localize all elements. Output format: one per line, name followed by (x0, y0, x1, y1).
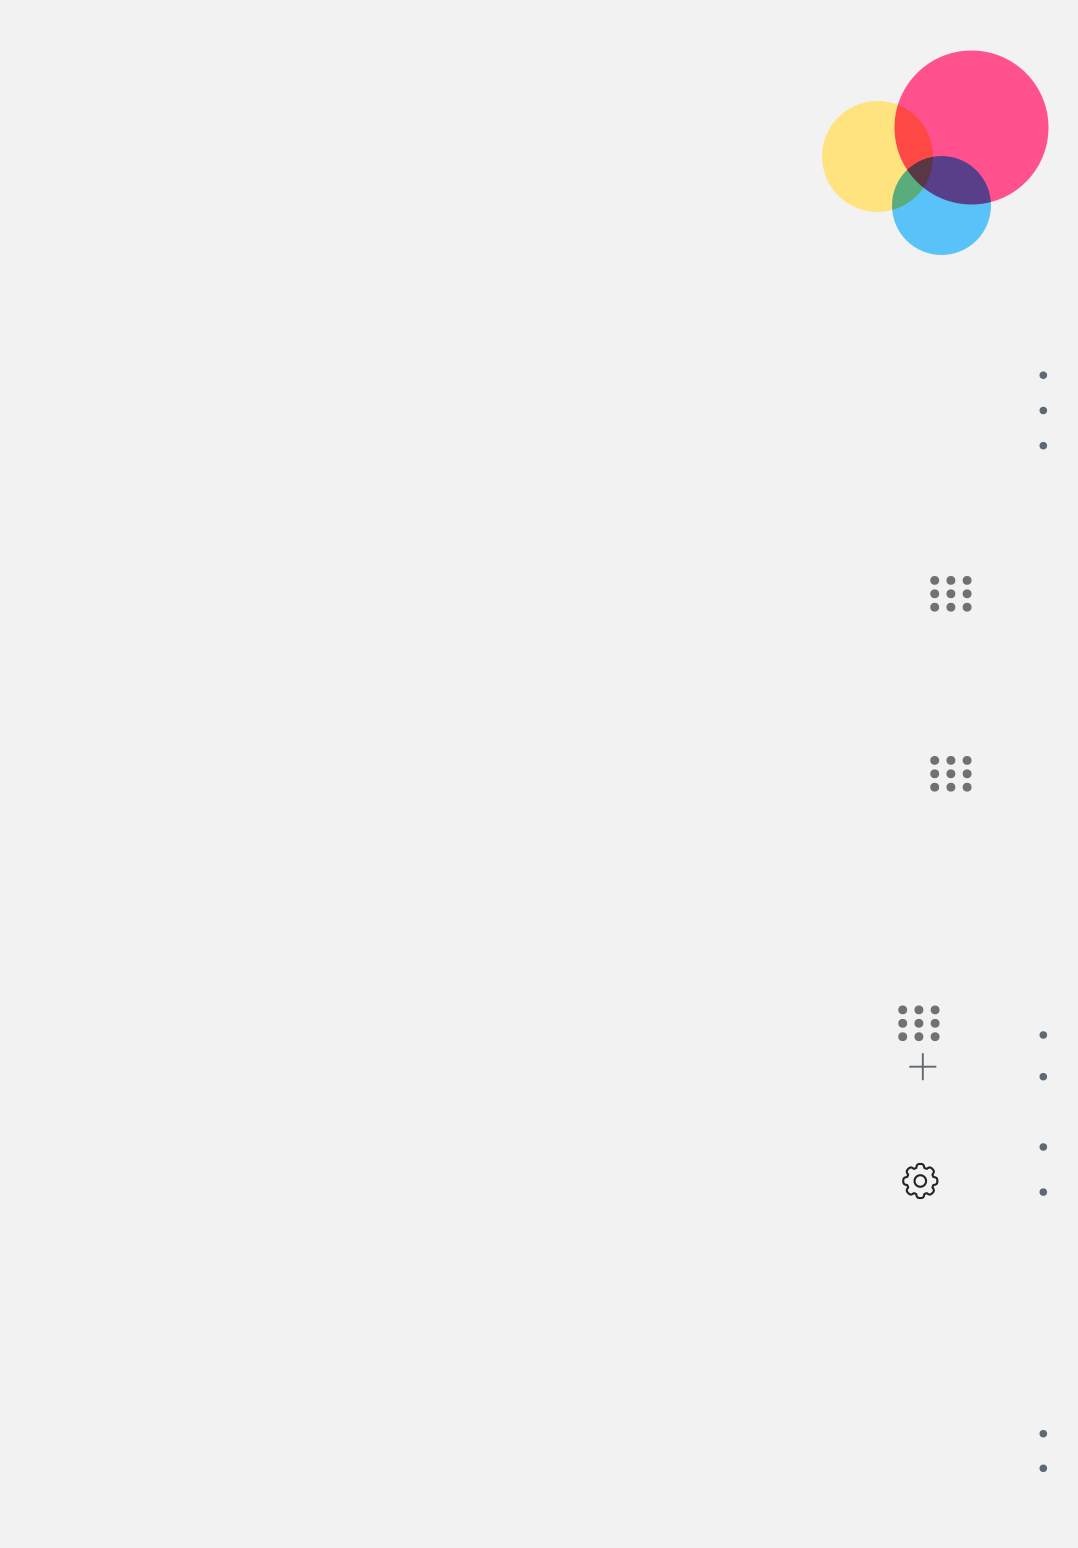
button[interactable]: Add (909, 1053, 936, 1080)
button[interactable]: All apps (930, 756, 971, 792)
button[interactable]: Settings (904, 1165, 936, 1197)
button[interactable]: All apps (898, 1005, 939, 1041)
button[interactable]: All apps (930, 576, 971, 612)
